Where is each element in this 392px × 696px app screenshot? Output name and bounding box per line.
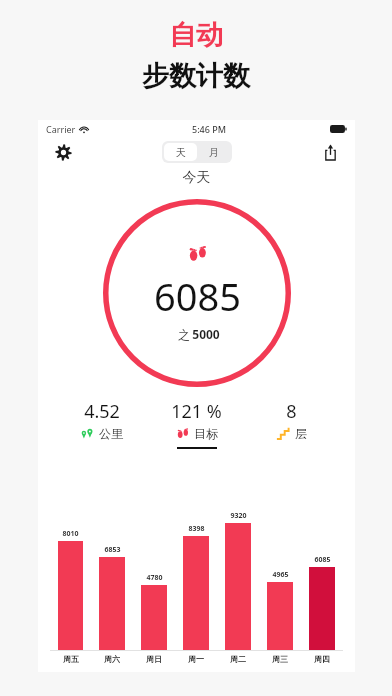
button[interactable]: 6853	[91, 499, 133, 650]
staticText: 步数计数	[0, 59, 392, 93]
button[interactable]: 121 %	[149, 399, 244, 449]
staticText: 8398	[188, 524, 205, 534]
button[interactable]: 9320	[217, 499, 259, 650]
staticText: 今天	[38, 169, 355, 187]
button[interactable]: Settings	[52, 141, 74, 163]
button[interactable]: 4965	[259, 499, 301, 650]
staticText: 周日	[146, 654, 162, 664]
staticText: 4.52	[84, 399, 120, 424]
staticText: 8	[286, 399, 297, 424]
staticText: 天	[176, 146, 186, 159]
staticText: 4780	[146, 573, 163, 583]
staticText: 6085	[314, 555, 331, 565]
staticText: 周一	[188, 654, 204, 664]
button[interactable]: 天	[164, 143, 197, 161]
staticText: 层	[295, 426, 307, 441]
staticText: 8010	[62, 529, 79, 539]
staticText: 公里	[99, 426, 123, 441]
staticText: 6853	[104, 545, 121, 555]
staticText: 周四	[314, 654, 330, 664]
button[interactable]: Share	[319, 141, 341, 163]
staticText: 周三	[272, 654, 288, 664]
button[interactable]: 4780	[133, 499, 175, 650]
staticText: 周二	[230, 654, 246, 664]
button[interactable]: 6085	[103, 199, 291, 387]
button[interactable]: 8010	[50, 499, 91, 650]
staticText: 周六	[104, 654, 120, 664]
staticText: 之	[176, 326, 192, 342]
button[interactable]: 6085	[301, 499, 343, 650]
button[interactable]: 8398	[175, 499, 217, 650]
staticText: 6085	[154, 270, 241, 322]
staticText: 4965	[272, 570, 289, 580]
staticText: 月	[209, 146, 219, 159]
staticText: 121 %	[171, 399, 222, 424]
staticText: 目标	[194, 426, 218, 441]
button[interactable]: 8	[244, 399, 339, 449]
staticText: 周五	[63, 654, 79, 664]
staticText: Carrier	[46, 123, 76, 135]
button[interactable]: 月	[197, 143, 230, 161]
staticText: 自动	[0, 18, 392, 52]
staticText: 5000	[192, 326, 220, 342]
button[interactable]: 4.52	[54, 399, 149, 449]
staticText: 5:46 PM	[192, 123, 226, 135]
staticText: 9320	[230, 511, 247, 521]
